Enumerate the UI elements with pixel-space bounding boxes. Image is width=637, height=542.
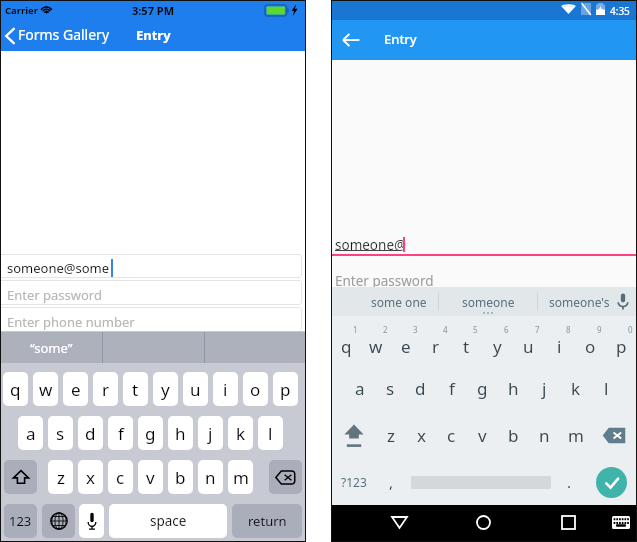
- button[interactable]: g: [467, 364, 498, 412]
- button[interactable]: .: [554, 459, 585, 505]
- button[interactable]: Shift: [4, 460, 37, 494]
- button[interactable]: 3: [391, 316, 421, 364]
- button[interactable]: b: [168, 460, 193, 494]
- button[interactable]: s: [48, 416, 73, 450]
- staticText: r: [102, 378, 110, 401]
- button[interactable]: m: [560, 412, 591, 459]
- button[interactable]: g: [138, 416, 163, 450]
- button[interactable]: 1: [331, 316, 361, 364]
- staticText: o: [585, 335, 596, 358]
- button[interactable]: b: [498, 412, 529, 459]
- button[interactable]: someone@: [335, 236, 637, 254]
- button[interactable]: 5: [451, 316, 482, 364]
- button[interactable]: Voice input: [609, 287, 637, 316]
- button[interactable]: z: [376, 412, 406, 459]
- button[interactable]: h: [498, 364, 529, 412]
- button[interactable]: i: [213, 372, 238, 406]
- button[interactable]: 7: [513, 316, 544, 364]
- staticText: Enter phone number: [7, 313, 135, 331]
- other: Change keyboard: [50, 512, 68, 530]
- button[interactable]: Home: [465, 504, 501, 540]
- staticText: ?123: [341, 474, 367, 490]
- staticText: 8: [566, 324, 571, 335]
- button[interactable]: p: [273, 372, 298, 406]
- button[interactable]: [407, 459, 554, 505]
- staticText: 4: [443, 324, 448, 335]
- button[interactable]: c: [436, 412, 467, 459]
- button[interactable]: Enter phone number: [0, 307, 306, 334]
- staticText: i: [223, 378, 228, 401]
- button[interactable]: 9: [575, 316, 606, 364]
- button[interactable]: q: [3, 372, 28, 406]
- button[interactable]: someone's: [538, 287, 621, 316]
- staticText: 7: [535, 324, 540, 335]
- button[interactable]: f: [108, 416, 133, 450]
- button[interactable]: k: [228, 416, 253, 450]
- button[interactable]: 0: [606, 316, 637, 364]
- other: Delete: [275, 470, 296, 485]
- button[interactable]: m: [228, 460, 253, 494]
- button[interactable]: 123: [4, 504, 37, 538]
- button[interactable]: Back: [381, 504, 417, 540]
- button[interactable]: Forms Gallery: [0, 24, 116, 47]
- button[interactable]: v: [138, 460, 163, 494]
- button[interactable]: ,: [376, 459, 407, 505]
- button[interactable]: x: [406, 412, 436, 459]
- staticText: Enter password: [335, 272, 434, 290]
- button[interactable]: x: [78, 460, 103, 494]
- button[interactable]: space: [109, 504, 227, 538]
- button[interactable]: v: [467, 412, 498, 459]
- staticText: c: [447, 424, 456, 447]
- staticText: f: [118, 422, 124, 445]
- button[interactable]: 2: [361, 316, 391, 364]
- button[interactable]: d: [78, 416, 103, 450]
- button[interactable]: Shift: [331, 412, 376, 459]
- button[interactable]: h: [168, 416, 193, 450]
- button[interactable]: j: [529, 364, 560, 412]
- button[interactable]: 6: [482, 316, 513, 364]
- button[interactable]: Back: [336, 25, 366, 55]
- button[interactable]: n: [529, 412, 560, 459]
- button[interactable]: Backspace: [591, 412, 637, 459]
- button[interactable]: e: [63, 372, 88, 406]
- button[interactable]: k: [560, 364, 591, 412]
- button[interactable]: w: [33, 372, 58, 406]
- button[interactable]: f: [436, 364, 467, 412]
- button[interactable]: r: [93, 372, 118, 406]
- button[interactable]: Done: [596, 467, 627, 498]
- button[interactable]: Show keyboard: [603, 504, 637, 540]
- button[interactable]: l: [591, 364, 622, 412]
- button[interactable]: Recents: [550, 504, 586, 540]
- button[interactable]: some one: [359, 287, 439, 316]
- button[interactable]: Change keyboard: [42, 504, 75, 538]
- button[interactable]: ?123: [331, 459, 376, 505]
- button[interactable]: “some”: [0, 332, 102, 363]
- button[interactable]: d: [405, 364, 436, 412]
- button[interactable]: a: [345, 364, 375, 412]
- button[interactable]: n: [198, 460, 223, 494]
- button[interactable]: Enter password: [0, 280, 306, 307]
- staticText: n: [539, 424, 550, 447]
- button[interactable]: a: [18, 416, 43, 450]
- button[interactable]: return: [232, 504, 302, 538]
- button[interactable]: someone@some: [0, 254, 306, 280]
- staticText: 2: [383, 324, 388, 335]
- button[interactable]: l: [258, 416, 283, 450]
- button[interactable]: t: [123, 372, 148, 406]
- button[interactable]: y: [153, 372, 178, 406]
- button[interactable]: Dictation: [79, 504, 104, 538]
- staticText: e: [71, 378, 81, 401]
- button[interactable]: someone: [439, 287, 538, 316]
- button[interactable]: Delete: [269, 460, 302, 494]
- button[interactable]: c: [108, 460, 133, 494]
- button[interactable]: [205, 332, 306, 363]
- button[interactable]: Enter password: [335, 272, 434, 290]
- button[interactable]: j: [198, 416, 223, 450]
- button[interactable]: u: [183, 372, 208, 406]
- button[interactable]: s: [375, 364, 405, 412]
- button[interactable]: z: [48, 460, 73, 494]
- button[interactable]: o: [243, 372, 268, 406]
- button[interactable]: 8: [544, 316, 575, 364]
- button[interactable]: 4: [421, 316, 451, 364]
